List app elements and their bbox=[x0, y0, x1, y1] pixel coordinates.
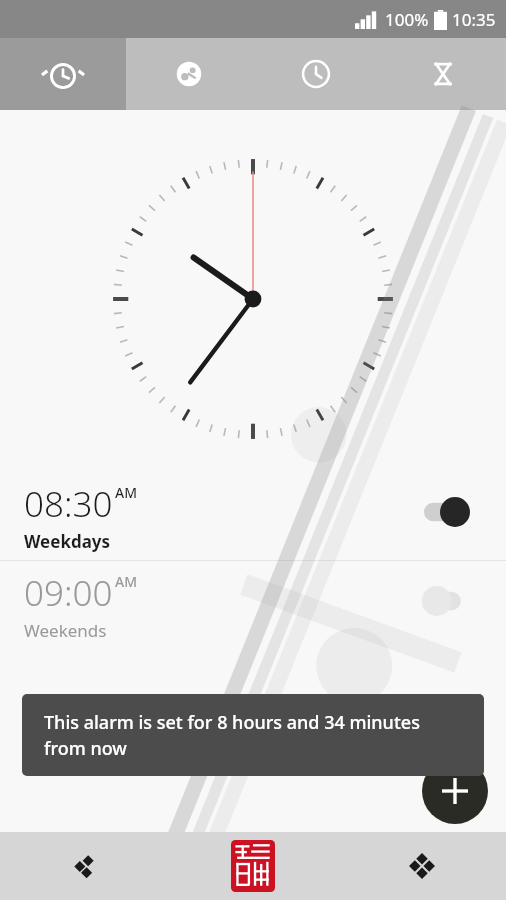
button[interactable]: 08:30 bbox=[0, 472, 506, 560]
button[interactable]: 09:00 bbox=[0, 561, 506, 649]
staticText: 100% bbox=[385, 8, 429, 31]
staticText: Weekends bbox=[24, 619, 107, 642]
staticText: AM bbox=[115, 572, 138, 591]
staticText: 09:00 bbox=[24, 569, 113, 617]
button[interactable]: Timer bbox=[379, 38, 506, 110]
button[interactable]: Alarm off bbox=[424, 586, 470, 616]
button[interactable]: Home bbox=[168, 832, 337, 900]
button[interactable]: Alarm on bbox=[424, 497, 470, 527]
button[interactable]: World clock bbox=[126, 38, 252, 110]
staticText: AM bbox=[115, 483, 138, 502]
button[interactable]: Back bbox=[337, 832, 506, 900]
button[interactable]: Alarm bbox=[0, 38, 126, 110]
button[interactable]: Add alarm bbox=[422, 758, 488, 824]
button[interactable]: Stopwatch bbox=[252, 38, 379, 110]
button[interactable]: Recents bbox=[0, 832, 168, 900]
staticText: Weekdays bbox=[24, 530, 111, 553]
staticText: 10:35 bbox=[452, 8, 496, 31]
staticText: 08:30 bbox=[24, 480, 113, 528]
staticText: This alarm is set for 8 hours and 34 min… bbox=[44, 710, 462, 760]
